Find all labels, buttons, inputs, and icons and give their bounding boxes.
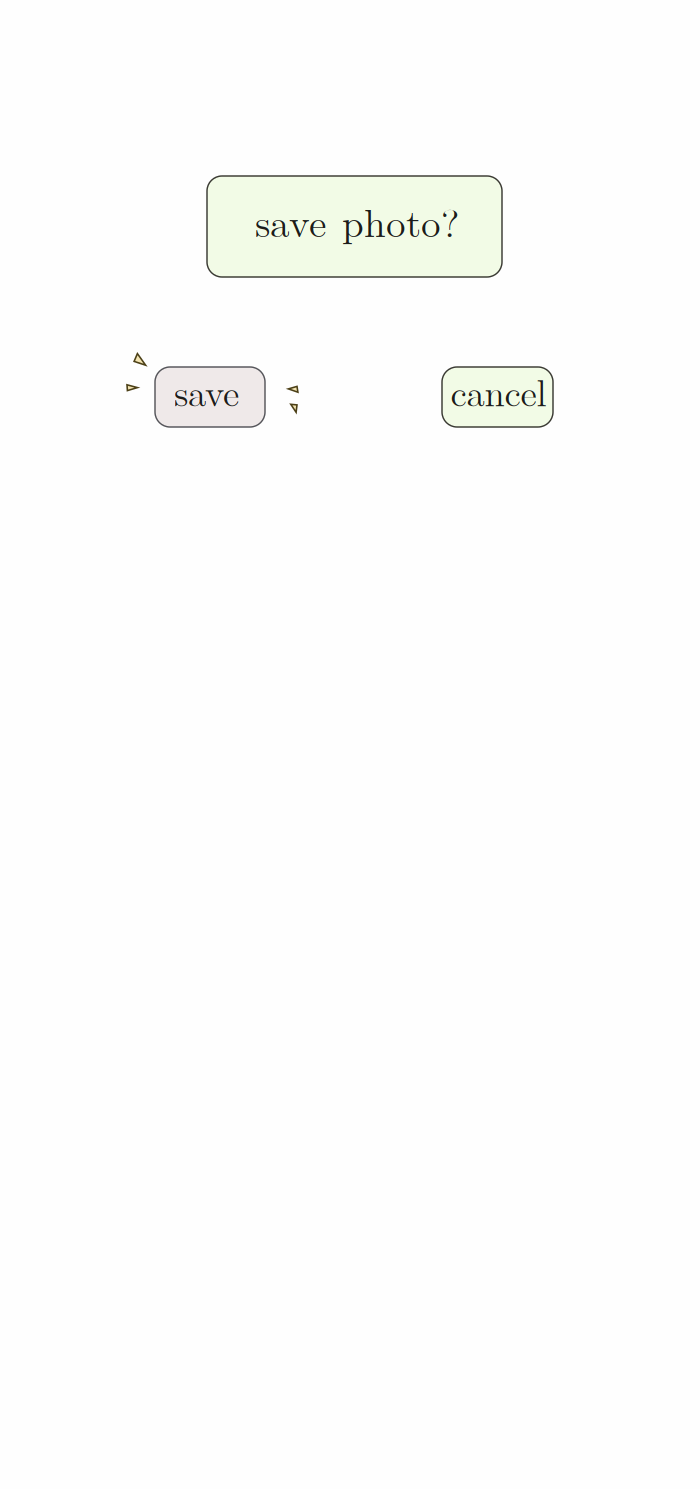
staticText: save <box>174 364 239 417</box>
button[interactable]: save <box>155 367 265 427</box>
staticText: cancel <box>450 364 546 417</box>
staticText: save photo? <box>255 192 459 248</box>
button[interactable]: cancel <box>442 367 553 427</box>
